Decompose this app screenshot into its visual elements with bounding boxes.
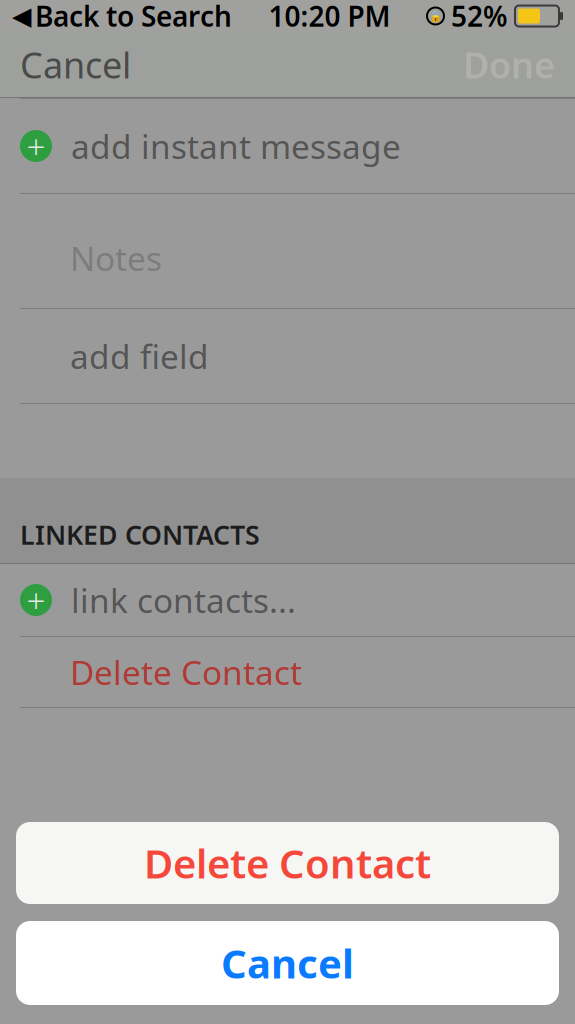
staticText: link contacts... — [71, 578, 296, 622]
staticText: Cancel — [20, 41, 131, 88]
staticText: Delete Contact — [144, 836, 431, 889]
button[interactable]: + — [0, 99, 575, 193]
staticText: Delete Contact — [70, 650, 302, 694]
staticText: add field — [70, 334, 209, 378]
button[interactable]: + — [0, 564, 575, 636]
staticText: add instant message — [71, 124, 401, 168]
staticText: LINKED CONTACTS — [20, 517, 260, 552]
staticText: 🔒 — [429, 10, 442, 22]
button[interactable]: Done — [447, 31, 571, 98]
staticText: ◀ — [12, 2, 31, 30]
button[interactable]: Delete Contact — [16, 822, 559, 904]
button[interactable]: Cancel — [4, 31, 147, 98]
button[interactable]: Cancel — [16, 921, 559, 1005]
staticText: + — [26, 578, 45, 622]
button[interactable]: add field — [0, 309, 575, 403]
staticText: Notes — [70, 236, 162, 280]
staticText: 52% — [451, 0, 508, 35]
staticText: Done — [463, 41, 555, 88]
staticText: 10:20 PM — [268, 0, 390, 35]
staticText: Back to Search — [35, 0, 232, 35]
staticText: Cancel — [221, 936, 354, 989]
staticText: + — [26, 124, 45, 168]
